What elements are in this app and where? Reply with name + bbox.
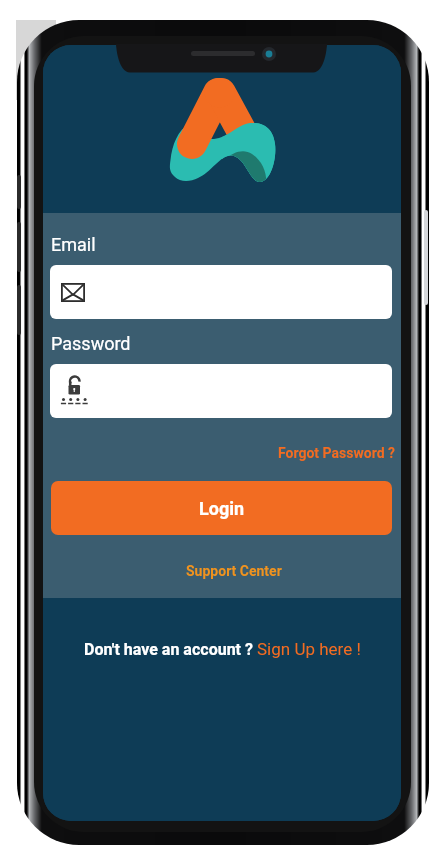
button[interactable]: Support Center <box>186 563 282 579</box>
button[interactable]: Login <box>51 481 392 535</box>
staticText: Email <box>51 234 96 255</box>
button[interactable]: Forgot Password ? <box>278 445 395 461</box>
staticText: Password <box>51 333 131 354</box>
button[interactable]: Sign Up here ! <box>257 639 361 659</box>
staticText: Login <box>199 498 245 519</box>
staticText: Don't have an account ? <box>84 640 257 659</box>
button[interactable] <box>50 265 392 319</box>
button[interactable] <box>50 364 392 418</box>
